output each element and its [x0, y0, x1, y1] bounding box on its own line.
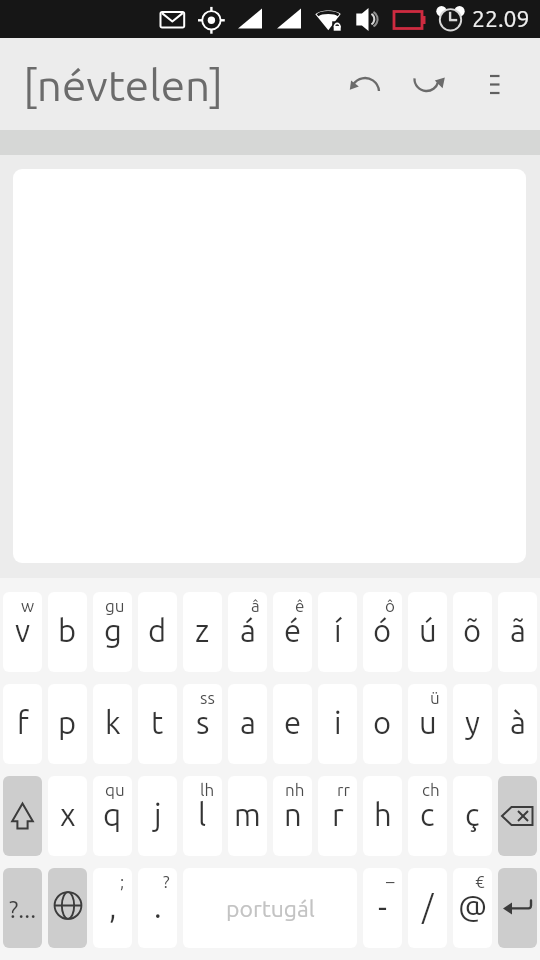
staticText: ü [430, 688, 440, 707]
button[interactable]: õ [453, 592, 492, 672]
button[interactable]: Undo [336, 38, 396, 130]
staticText: lh [200, 780, 215, 799]
button[interactable]: d [138, 592, 177, 672]
button[interactable]: k [93, 684, 132, 764]
staticText: õ [463, 613, 482, 648]
staticText: w [21, 596, 35, 615]
button[interactable]: h [363, 776, 402, 856]
staticText: ê [295, 596, 305, 615]
staticText: portugál [226, 896, 315, 922]
staticText: d [148, 613, 167, 648]
staticText: ã [510, 613, 526, 648]
button[interactable]: y [453, 684, 492, 764]
staticText: , [109, 889, 117, 924]
button[interactable]: Redo [398, 38, 458, 130]
staticText: q [103, 797, 122, 832]
button[interactable]: í [318, 592, 357, 672]
button[interactable]: Backspace [498, 776, 537, 856]
staticText: / [422, 889, 434, 924]
staticText: r [332, 797, 344, 832]
staticText: ú [419, 613, 437, 648]
button[interactable]: ç [453, 776, 492, 856]
button[interactable]: Enter [498, 868, 537, 948]
button[interactable]: Shift [3, 776, 42, 856]
staticText: s [196, 705, 210, 740]
staticText: i [334, 705, 342, 740]
staticText: z [195, 613, 210, 648]
button[interactable]: m [228, 776, 267, 856]
button[interactable]: a [228, 684, 267, 764]
button[interactable]: p [48, 684, 87, 764]
button[interactable]: gu [93, 592, 132, 672]
staticText: é [284, 613, 302, 648]
button[interactable]: qu [93, 776, 132, 856]
button[interactable]: € [453, 868, 492, 948]
staticText: ô [385, 596, 395, 615]
staticText: u [419, 705, 437, 740]
staticText: rr [337, 780, 350, 799]
staticText: gu [105, 596, 125, 615]
staticText: ? [163, 872, 170, 891]
button[interactable]: ô [363, 592, 402, 672]
staticText: h [374, 797, 392, 832]
button[interactable]: b [48, 592, 87, 672]
staticText: f [17, 705, 29, 740]
button[interactable]: â [228, 592, 267, 672]
staticText: o [373, 705, 392, 740]
staticText: ?... [9, 896, 37, 923]
staticText: c [420, 797, 435, 832]
staticText: € [475, 872, 485, 891]
button[interactable]: – [363, 868, 402, 948]
button[interactable]: ss [183, 684, 222, 764]
button[interactable]: ã [498, 592, 537, 672]
staticText: k [105, 705, 121, 740]
staticText: [névtelen] [23, 60, 224, 109]
button[interactable]: t [138, 684, 177, 764]
staticText: p [58, 705, 77, 740]
button[interactable]: lh [183, 776, 222, 856]
button[interactable]: j [138, 776, 177, 856]
staticText: nh [285, 780, 305, 799]
staticText: qu [105, 780, 125, 799]
staticText: ; [120, 872, 125, 891]
staticText: y [465, 705, 480, 740]
button[interactable]: nh [273, 776, 312, 856]
button[interactable]: ê [273, 592, 312, 672]
staticText: @ [458, 889, 488, 924]
button[interactable]: ; [93, 868, 132, 948]
staticText: ó [373, 613, 392, 648]
staticText: ch [422, 780, 440, 799]
button[interactable]: ?... [3, 868, 42, 948]
button[interactable]: ú [408, 592, 447, 672]
staticText: a [240, 705, 256, 740]
staticText: x [60, 797, 76, 832]
button[interactable]: ü [408, 684, 447, 764]
button[interactable]: e [273, 684, 312, 764]
button[interactable]: ? [138, 868, 177, 948]
button[interactable]: portugál [183, 868, 357, 948]
staticText: m [234, 797, 261, 832]
staticText: à [510, 705, 526, 740]
staticText: í [334, 613, 342, 648]
button[interactable]: i [318, 684, 357, 764]
button[interactable]: / [408, 868, 447, 948]
button[interactable]: ch [408, 776, 447, 856]
button[interactable]: w [3, 592, 42, 672]
staticText: b [58, 613, 77, 648]
button[interactable]: à [498, 684, 537, 764]
button[interactable]: z [183, 592, 222, 672]
button[interactable]: Switch language [48, 868, 87, 948]
button[interactable]: o [363, 684, 402, 764]
staticText: ss [200, 688, 215, 707]
staticText: ç [465, 797, 480, 832]
staticText: g [104, 613, 122, 648]
staticText: â [251, 596, 260, 615]
staticText: 22.09 [472, 6, 530, 32]
button[interactable]: More options [466, 38, 516, 130]
button[interactable]: f [3, 684, 42, 764]
button[interactable]: x [48, 776, 87, 856]
staticText: n [284, 797, 302, 832]
staticText: - [378, 889, 387, 924]
button[interactable]: rr [318, 776, 357, 856]
